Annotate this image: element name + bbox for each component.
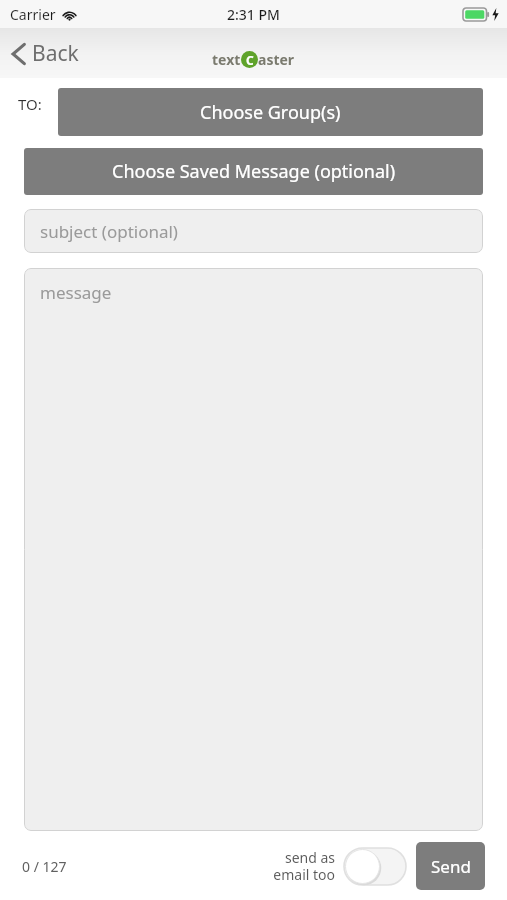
staticText: Choose Group(s) bbox=[200, 100, 341, 125]
staticText: message bbox=[40, 281, 112, 304]
staticText: Carrier bbox=[10, 5, 56, 24]
button[interactable]: Choose Saved Message (optional) bbox=[24, 148, 483, 195]
staticText: TO: bbox=[18, 94, 42, 114]
button[interactable]: Back bbox=[0, 33, 93, 74]
button[interactable]: message bbox=[24, 268, 483, 831]
button[interactable]: Send bbox=[416, 842, 485, 890]
button[interactable]: Choose Group(s) bbox=[58, 88, 483, 136]
staticText: text bbox=[212, 50, 241, 69]
staticText: 2:31 PM bbox=[227, 5, 280, 24]
staticText: Choose Saved Message (optional) bbox=[112, 159, 396, 184]
staticText: aster bbox=[258, 50, 295, 69]
staticText: Send bbox=[431, 855, 471, 878]
staticText: subject (optional) bbox=[40, 220, 178, 243]
staticText: send as email too bbox=[273, 848, 335, 884]
staticText: C bbox=[246, 52, 254, 68]
staticText: 0 / 127 bbox=[22, 857, 67, 876]
button[interactable]: Send as email too toggle bbox=[344, 848, 406, 885]
button[interactable]: subject (optional) bbox=[24, 209, 483, 253]
staticText: Back bbox=[32, 39, 79, 68]
